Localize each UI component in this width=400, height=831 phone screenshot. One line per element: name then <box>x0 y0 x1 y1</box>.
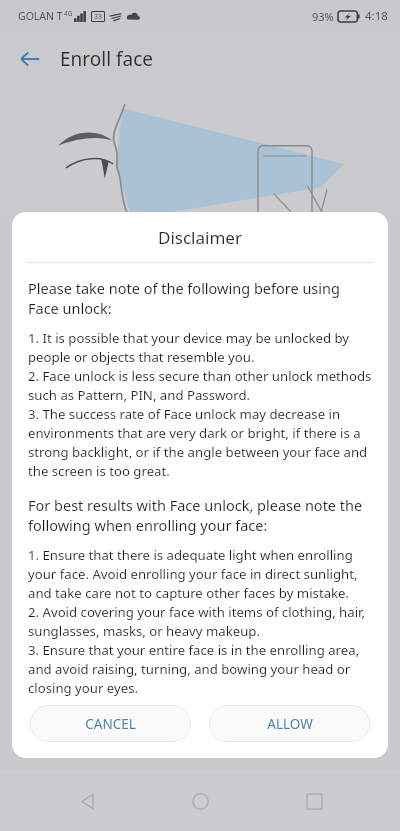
button[interactable]: Back <box>60 774 114 828</box>
staticText: Disclaimer <box>158 226 242 249</box>
button[interactable]: CANCEL <box>30 705 191 742</box>
button[interactable]: Back <box>8 37 52 81</box>
staticText: Please take note of the following before… <box>28 278 374 318</box>
staticText: GOLAN T <box>18 9 63 23</box>
button[interactable]: Home <box>173 774 227 828</box>
staticText: 1. It is possible that your device may b… <box>28 329 374 479</box>
staticText: 33 <box>94 12 103 22</box>
staticText: 4:18 <box>365 8 388 24</box>
staticText: 1. Ensure that there is adequate light w… <box>28 546 374 696</box>
staticText: 93% <box>312 9 334 24</box>
staticText: 4G <box>64 9 73 18</box>
staticText: CANCEL <box>85 715 136 733</box>
button[interactable]: ALLOW <box>209 705 370 742</box>
staticText: ALLOW <box>267 715 313 733</box>
button[interactable]: Recent apps <box>287 774 341 828</box>
staticText: For best results with Face unlock, pleas… <box>28 495 374 535</box>
staticText: Enroll face <box>60 46 154 72</box>
